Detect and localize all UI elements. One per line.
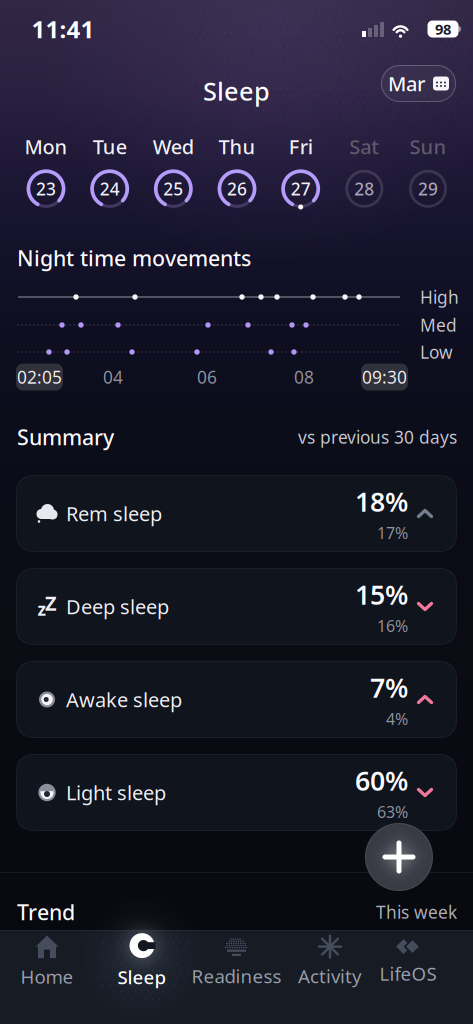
staticText: 29 — [418, 177, 438, 200]
button[interactable]: Sleep — [97, 932, 187, 990]
staticText: Light sleep — [66, 779, 166, 806]
staticText: z — [37, 597, 46, 620]
button[interactable]: Fri — [281, 133, 321, 209]
staticText: 98 — [435, 19, 451, 39]
staticText: 27 — [291, 177, 311, 200]
button[interactable]: Sun — [408, 133, 448, 209]
button[interactable]: Activity — [285, 933, 375, 991]
staticText: Sleep — [117, 965, 166, 989]
button[interactable]: Sat — [344, 133, 384, 209]
staticText: Z — [45, 590, 57, 616]
staticText: 60% — [355, 763, 408, 798]
staticText: Night time movements — [17, 244, 251, 272]
staticText: 7% — [370, 670, 408, 705]
staticText: LifeOS — [379, 961, 436, 986]
staticText: Tue — [93, 133, 127, 160]
staticText: Awake sleep — [66, 686, 182, 713]
staticText: This week — [376, 900, 457, 923]
staticText: Rem sleep — [66, 500, 162, 527]
staticText: Readiness — [191, 964, 281, 988]
button[interactable]: Add — [365, 823, 433, 891]
staticText: 02:05 — [17, 365, 62, 388]
staticText: 18% — [355, 484, 408, 519]
button[interactable]: Mon — [24, 133, 67, 209]
staticText: vs previous 30 days — [298, 425, 457, 448]
button[interactable]: Select month — [381, 65, 456, 102]
staticText: Mar — [388, 70, 425, 97]
staticText: Sleep — [203, 74, 270, 108]
staticText: 08 — [294, 365, 314, 388]
staticText: Mon — [24, 133, 67, 160]
button[interactable]: Awake sleep — [16, 661, 457, 738]
staticText: Fri — [289, 133, 313, 160]
button[interactable]: Home — [2, 933, 92, 991]
staticText: Thu — [218, 133, 255, 160]
staticText: 06 — [197, 365, 217, 388]
staticText: Low — [420, 340, 453, 363]
staticText: 28 — [354, 177, 374, 200]
staticText: 15% — [355, 577, 408, 612]
staticText: 4% — [386, 708, 408, 729]
button[interactable]: Readiness — [191, 933, 281, 991]
staticText: Home — [20, 964, 73, 989]
button[interactable]: Tue — [90, 133, 130, 209]
staticText: Wed — [153, 133, 194, 160]
button[interactable]: Thu — [217, 133, 257, 209]
staticText: 26 — [227, 177, 247, 200]
staticText: 17% — [377, 522, 408, 543]
staticText: Activity — [298, 964, 362, 988]
button[interactable]: z — [16, 568, 457, 645]
button[interactable]: Wed — [153, 133, 194, 209]
staticText: 04 — [103, 365, 123, 388]
staticText: Deep sleep — [66, 593, 169, 620]
staticText: Med — [420, 313, 457, 336]
staticText: Summary — [17, 423, 114, 451]
staticText: High — [420, 285, 459, 308]
staticText: 11:41 — [31, 13, 94, 45]
staticText: 63% — [377, 801, 408, 822]
staticText: 09:30 — [362, 365, 407, 388]
staticText: 16% — [377, 615, 408, 636]
staticText: Sun — [409, 133, 446, 160]
button[interactable]: Rem sleep — [16, 475, 457, 552]
staticText: Sat — [349, 133, 379, 160]
staticText: 24 — [100, 177, 120, 200]
staticText: Trend — [17, 898, 75, 926]
button[interactable]: Light sleep — [16, 754, 457, 831]
staticText: 23 — [36, 177, 56, 200]
staticText: 25 — [163, 177, 183, 200]
button[interactable]: LifeOS — [363, 933, 453, 991]
